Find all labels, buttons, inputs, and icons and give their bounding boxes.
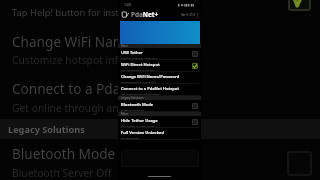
staticText: 1:24 [124, 2, 131, 7]
button[interactable]: Connect to a PdaNet Hotspot [118, 84, 201, 96]
other: PdaNet app icon [122, 11, 129, 18]
staticText: Connect to a PdaNet Hotspot [121, 86, 180, 91]
staticText: ! [197, 11, 199, 18]
staticText: Bluetooth Server Off [12, 166, 112, 180]
button[interactable]: Hide Tether Usage [118, 116, 201, 128]
button[interactable]: WiFi Direct Hotspot [118, 60, 201, 72]
button[interactable]: Bluetooth Mode [118, 100, 201, 112]
staticText: Get online through another device [121, 92, 160, 95]
staticText: Ver 5.31.0 [181, 13, 196, 17]
staticText: half key needed [121, 136, 139, 139]
staticText: WiFi Direct Hotspot [121, 62, 160, 67]
staticText: More [121, 112, 129, 116]
staticText: Legacy Solutions [8, 123, 85, 136]
staticText: Customize hotspot information [121, 80, 157, 83]
staticText: Connect to a PdaNet Hotspot [12, 79, 198, 98]
staticText: Tap WiFi tethering to connect [121, 68, 154, 71]
button[interactable]: USB Tether [118, 48, 201, 60]
staticText: Change WiFi Name/Password [12, 32, 200, 51]
staticText: Hide Tether Usage [121, 118, 158, 123]
staticText: Only needed for some carriers [121, 124, 156, 127]
staticText: Get online through another device [12, 101, 179, 115]
staticText: Bluetooth Mode [12, 144, 116, 163]
button[interactable]: Bluetooth Mode checkbox [287, 151, 312, 176]
button[interactable]: WiFi Direct Hotspot enabled [288, 0, 311, 11]
staticText: Customize hotspot information [12, 53, 163, 67]
staticText: PdaNet+ [131, 10, 159, 19]
staticText: ▮ ◆ ▮▮▮ ▮▮ [178, 2, 195, 7]
staticText: Bluetooth Mode [121, 102, 154, 107]
button[interactable]: Connection status banner [120, 21, 200, 44]
staticText: Supports computer connections [121, 56, 157, 59]
staticText: Full Version Unlocked [121, 130, 165, 135]
button[interactable]: Full Version Unlocked [118, 128, 201, 140]
staticText: Tap Help! button for instructions [12, 6, 155, 19]
staticText: Legacy Solutions [121, 96, 144, 100]
button[interactable]: Change WiFi Name/Password [118, 72, 201, 84]
staticText: Change WiFi Name/Password [121, 74, 180, 79]
staticText: Main [121, 44, 128, 48]
staticText: USB Tether [121, 50, 143, 55]
staticText: Bluetooth Server Off [121, 108, 145, 111]
